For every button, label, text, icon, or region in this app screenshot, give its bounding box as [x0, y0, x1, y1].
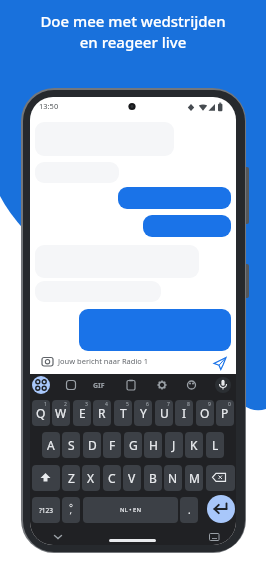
staticText: 6	[146, 401, 149, 408]
staticText: .	[188, 503, 191, 517]
button[interactable]	[215, 377, 231, 393]
button[interactable]	[32, 376, 50, 394]
staticText: 9	[208, 401, 211, 408]
button[interactable]: J	[165, 432, 183, 458]
staticText: B	[149, 470, 157, 486]
staticText: Z	[68, 470, 75, 486]
button[interactable]	[50, 529, 66, 543]
button[interactable]	[62, 497, 80, 523]
button[interactable]: Q	[32, 400, 50, 426]
staticText: 8	[187, 401, 190, 408]
staticText: Q	[36, 405, 46, 421]
button[interactable]: NL • EN	[83, 497, 178, 523]
button[interactable]	[154, 377, 170, 393]
staticText: T	[120, 405, 127, 421]
staticText: U	[160, 405, 169, 421]
button[interactable]: I	[175, 400, 193, 426]
staticText: W	[55, 405, 67, 421]
button[interactable]: U	[155, 400, 173, 426]
button[interactable]: N	[164, 465, 182, 491]
staticText: H	[149, 437, 158, 453]
staticText: ?123	[39, 506, 53, 515]
button[interactable]: V	[123, 465, 141, 491]
staticText: 4	[105, 401, 108, 408]
staticText: R	[98, 405, 106, 421]
staticText: J	[172, 437, 176, 453]
staticText: 7	[167, 401, 170, 408]
staticText: C	[108, 470, 116, 486]
button[interactable]: P	[216, 400, 234, 426]
button[interactable]: A	[42, 432, 60, 458]
staticText: Jouw bericht naar Radio 1	[58, 356, 149, 366]
staticText: F	[109, 437, 116, 453]
button[interactable]	[32, 465, 60, 491]
button[interactable]	[206, 529, 222, 543]
button[interactable]	[207, 495, 235, 523]
button[interactable]: O	[196, 400, 214, 426]
staticText: N	[168, 470, 178, 486]
button[interactable]: M	[185, 465, 203, 491]
staticText: Doe mee met wedstrijden en reageer live	[0, 11, 266, 53]
button[interactable]: X	[82, 465, 100, 491]
staticText: 1	[44, 401, 47, 408]
button[interactable]: ?123	[32, 497, 60, 523]
button[interactable]	[183, 377, 199, 393]
button[interactable]: Y	[134, 400, 152, 426]
staticText: 5	[126, 401, 129, 408]
staticText: GIF	[93, 381, 105, 391]
staticText: 13:50	[39, 101, 59, 111]
staticText: Y	[140, 405, 147, 421]
staticText: G	[129, 437, 138, 453]
staticText: O	[200, 405, 210, 421]
staticText: 0	[228, 401, 231, 408]
button[interactable]: L	[206, 432, 224, 458]
button[interactable]: F	[103, 432, 121, 458]
button[interactable]: Z	[62, 465, 80, 491]
button[interactable]	[211, 354, 229, 372]
button[interactable]: .	[180, 497, 198, 523]
staticText: K	[190, 437, 198, 453]
button[interactable]: D	[83, 432, 101, 458]
button[interactable]: S	[62, 432, 80, 458]
staticText: M	[189, 470, 200, 486]
button[interactable]	[92, 377, 108, 393]
button[interactable]: G	[124, 432, 142, 458]
button[interactable]	[206, 465, 235, 491]
button[interactable]: H	[144, 432, 162, 458]
staticText: NL • EN	[120, 506, 141, 514]
button[interactable]: W	[52, 400, 70, 426]
button[interactable]: B	[144, 465, 162, 491]
staticText: P	[221, 405, 229, 421]
button[interactable]	[123, 377, 139, 393]
button[interactable]	[30, 353, 236, 374]
button[interactable]: K	[185, 432, 203, 458]
staticText: V	[128, 470, 136, 486]
staticText: A	[47, 437, 55, 453]
button[interactable]: C	[103, 465, 121, 491]
staticText: D	[88, 437, 97, 453]
staticText: S	[68, 437, 75, 453]
button[interactable]: E	[73, 400, 91, 426]
staticText: X	[87, 470, 95, 486]
button[interactable]: R	[93, 400, 111, 426]
staticText: E	[79, 405, 86, 421]
staticText: I	[182, 405, 187, 421]
staticText: L	[212, 437, 219, 453]
button[interactable]	[63, 377, 79, 393]
button[interactable]: T	[114, 400, 132, 426]
staticText: 3	[85, 401, 88, 408]
staticText: 2	[64, 401, 67, 408]
button[interactable]	[101, 531, 164, 542]
